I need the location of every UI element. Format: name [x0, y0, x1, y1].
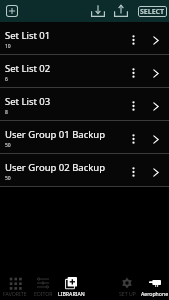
- staticText: FAVORITE: [3, 290, 27, 297]
- button[interactable]: More options: [125, 88, 142, 120]
- button[interactable]: Add: [6, 5, 18, 17]
- staticText: User Group 02 Backup: [5, 161, 106, 174]
- button[interactable]: Open: [142, 22, 169, 54]
- staticText: Set List 02: [5, 62, 51, 75]
- staticText: 10: [5, 43, 11, 50]
- staticText: EDITOR: [34, 290, 53, 297]
- button[interactable]: More options: [125, 55, 142, 87]
- button[interactable]: FAVORITE: [0, 272, 29, 300]
- button[interactable]: SELECT: [138, 6, 167, 17]
- button[interactable]: More options: [125, 22, 142, 54]
- button[interactable]: Open: [142, 55, 169, 87]
- button[interactable]: Set List 01: [0, 22, 169, 54]
- button[interactable]: EDITOR: [29, 272, 57, 300]
- button[interactable]: Download: [91, 5, 105, 17]
- button[interactable]: User Group 01 Backup: [0, 121, 169, 153]
- staticText: Aerophone: [141, 290, 169, 297]
- staticText: Set List 03: [5, 95, 51, 108]
- button[interactable]: Open: [142, 121, 169, 153]
- button[interactable]: More options: [125, 154, 142, 186]
- staticText: Set List 01: [5, 29, 51, 42]
- button[interactable]: Set List 02: [0, 55, 169, 87]
- button[interactable]: Open: [142, 154, 169, 186]
- button[interactable]: Set List 03: [0, 88, 169, 120]
- button[interactable]: SET UP: [113, 272, 141, 300]
- button[interactable]: User Group 02 Backup: [0, 154, 169, 186]
- button[interactable]: Open: [142, 88, 169, 120]
- staticText: 50: [5, 175, 11, 182]
- staticText: User Group 01 Backup: [5, 128, 106, 141]
- button[interactable]: LIBRARIAN: [57, 272, 85, 300]
- staticText: SET UP: [119, 290, 136, 297]
- staticText: SELECT: [140, 7, 165, 17]
- staticText: LIBRARIAN: [58, 290, 85, 297]
- staticText: 50: [5, 142, 11, 149]
- button[interactable]: Upload: [114, 5, 128, 17]
- button[interactable]: More options: [125, 121, 142, 153]
- staticText: 6: [5, 76, 8, 83]
- staticText: 8: [5, 109, 8, 116]
- button[interactable]: Aerophone: [141, 272, 169, 300]
